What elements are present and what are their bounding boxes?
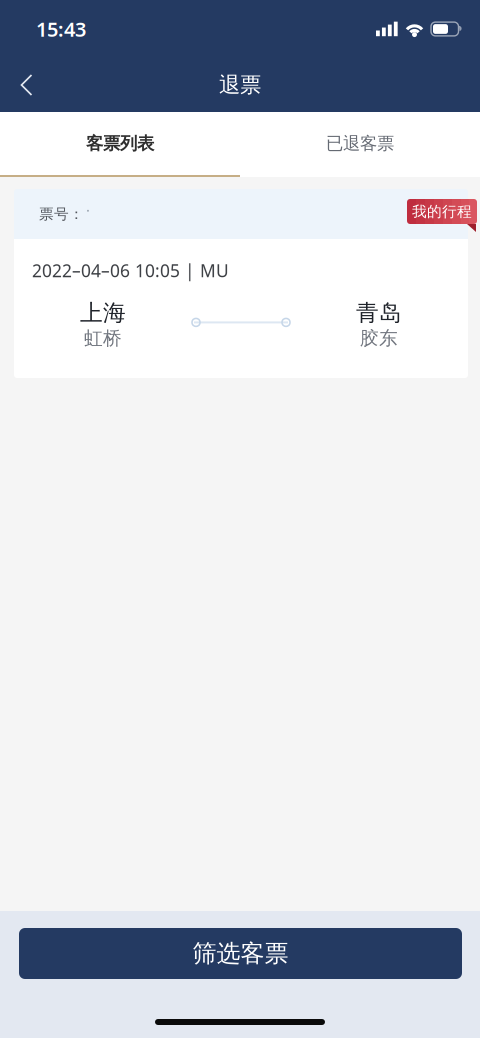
- button[interactable]: 筛选客票: [19, 928, 462, 979]
- staticText: 退票: [219, 72, 261, 98]
- staticText: 15:43: [36, 16, 86, 42]
- button[interactable]: Back: [0, 62, 53, 108]
- staticText: 青岛: [356, 299, 402, 327]
- staticText: 2022–04–06 10:05 | MU: [32, 259, 229, 282]
- staticText: ·: [86, 200, 90, 220]
- staticText: 客票列表: [86, 133, 154, 154]
- staticText: 上海: [80, 299, 126, 327]
- staticText: 筛选客票: [192, 939, 288, 968]
- button[interactable]: 已退客票: [240, 112, 480, 175]
- staticText: 我的行程: [412, 202, 472, 220]
- button[interactable]: 我的行程: [407, 199, 477, 232]
- button[interactable]: 客票列表: [0, 112, 240, 175]
- staticText: 已退客票: [326, 133, 394, 154]
- staticText: 票号：: [39, 205, 84, 223]
- staticText: 虹桥: [84, 327, 122, 350]
- staticText: 胶东: [360, 327, 398, 350]
